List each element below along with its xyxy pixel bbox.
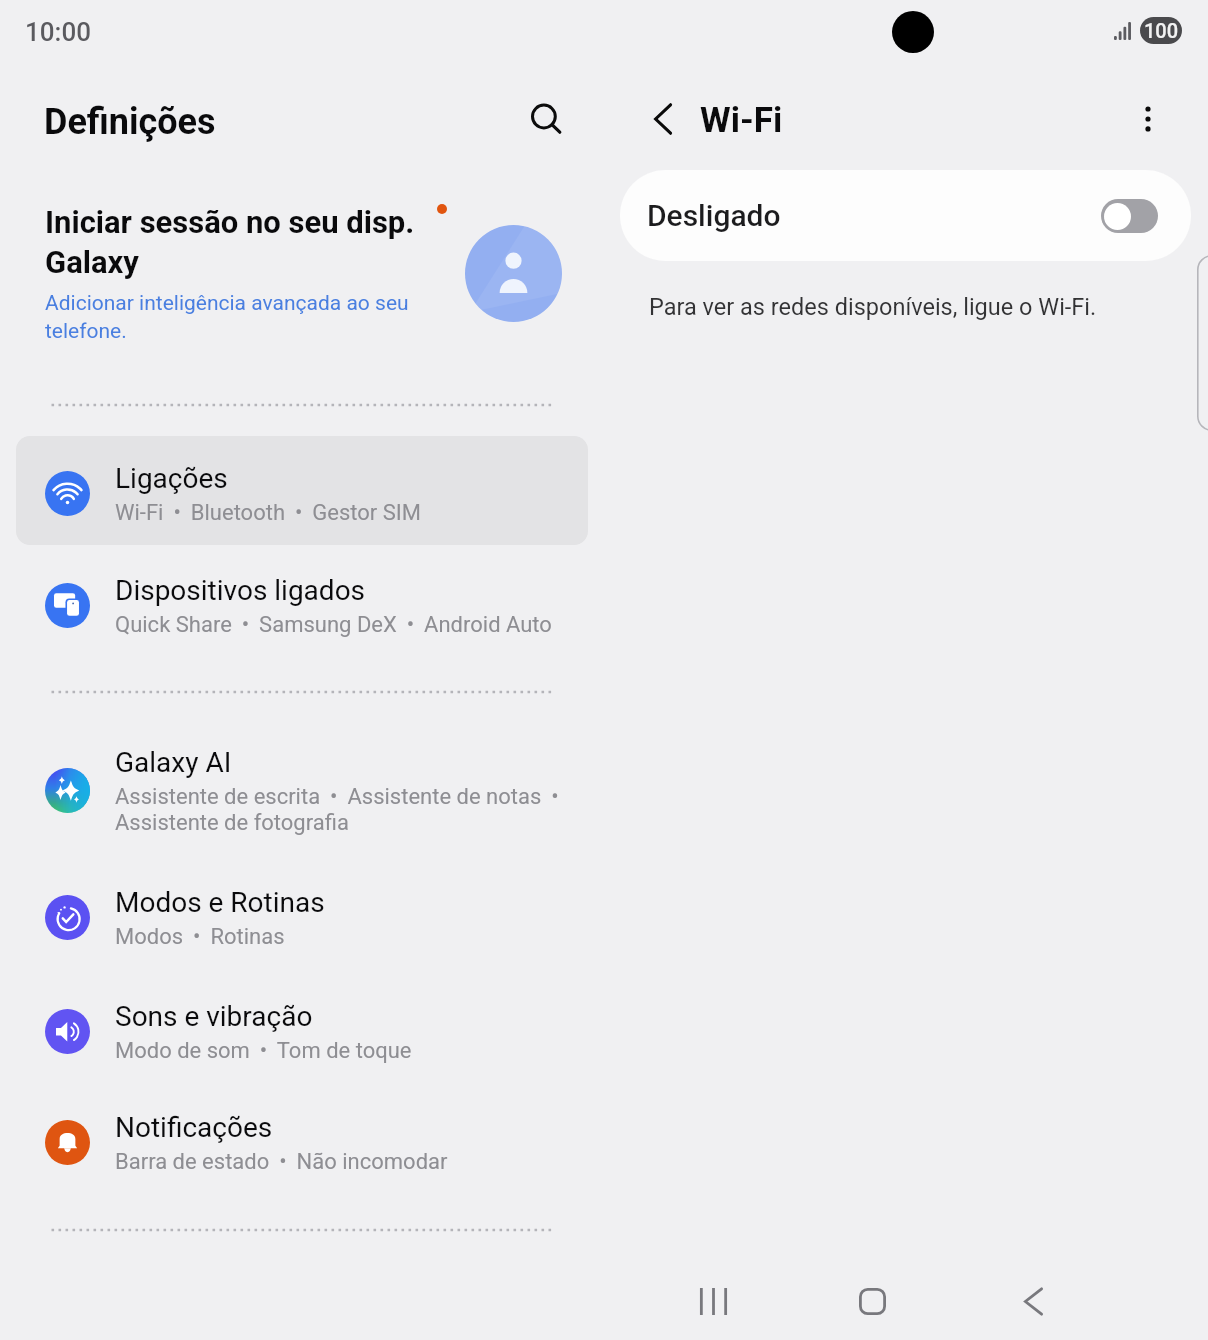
- staticText: Ligações: [115, 462, 228, 495]
- button[interactable]: [16, 978, 588, 1082]
- staticText: Desligado: [647, 198, 781, 233]
- staticText: 100: [1144, 19, 1179, 42]
- button[interactable]: Home: [834, 1263, 910, 1339]
- button[interactable]: Recent apps: [675, 1263, 751, 1339]
- button[interactable]: Iniciar sessão no seu disp. Galaxy: [16, 190, 588, 360]
- button[interactable]: Back: [635, 91, 691, 147]
- staticText: Barra de estado • Não incomodar: [115, 1149, 448, 1175]
- staticText: Wi-Fi: [700, 100, 783, 141]
- button[interactable]: [16, 864, 588, 968]
- staticText: Para ver as redes disponíveis, ligue o W…: [649, 293, 1097, 321]
- staticText: Quick Share • Samsung DeX • Android Auto: [115, 612, 552, 638]
- staticText: Assistente de fotografia: [115, 810, 349, 836]
- button[interactable]: Desligado: [620, 170, 1191, 261]
- button[interactable]: [16, 436, 588, 545]
- staticText: Adicionar inteligência avançada ao seu t…: [45, 291, 409, 343]
- staticText: Sons e vibração: [115, 1000, 313, 1033]
- staticText: Modos • Rotinas: [115, 924, 285, 950]
- button[interactable]: Search: [520, 92, 576, 148]
- staticText: Dispositivos ligados: [115, 574, 366, 607]
- button[interactable]: [16, 552, 588, 656]
- staticText: Definições: [44, 101, 216, 143]
- staticText: Iniciar sessão no seu disp. Galaxy: [45, 204, 415, 281]
- staticText: Assistente de escrita • Assistente de no…: [115, 784, 559, 810]
- button[interactable]: More options: [1120, 92, 1176, 148]
- staticText: Wi-Fi • Bluetooth • Gestor SIM: [115, 500, 422, 526]
- staticText: 10:00: [25, 17, 91, 47]
- staticText: Modos e Rotinas: [115, 886, 325, 919]
- button[interactable]: Back: [995, 1263, 1071, 1339]
- staticText: Galaxy AI: [115, 746, 232, 779]
- staticText: Modo de som • Tom de toque: [115, 1038, 412, 1064]
- staticText: Notificações: [115, 1111, 273, 1144]
- button[interactable]: [16, 724, 588, 854]
- button[interactable]: [16, 1089, 588, 1193]
